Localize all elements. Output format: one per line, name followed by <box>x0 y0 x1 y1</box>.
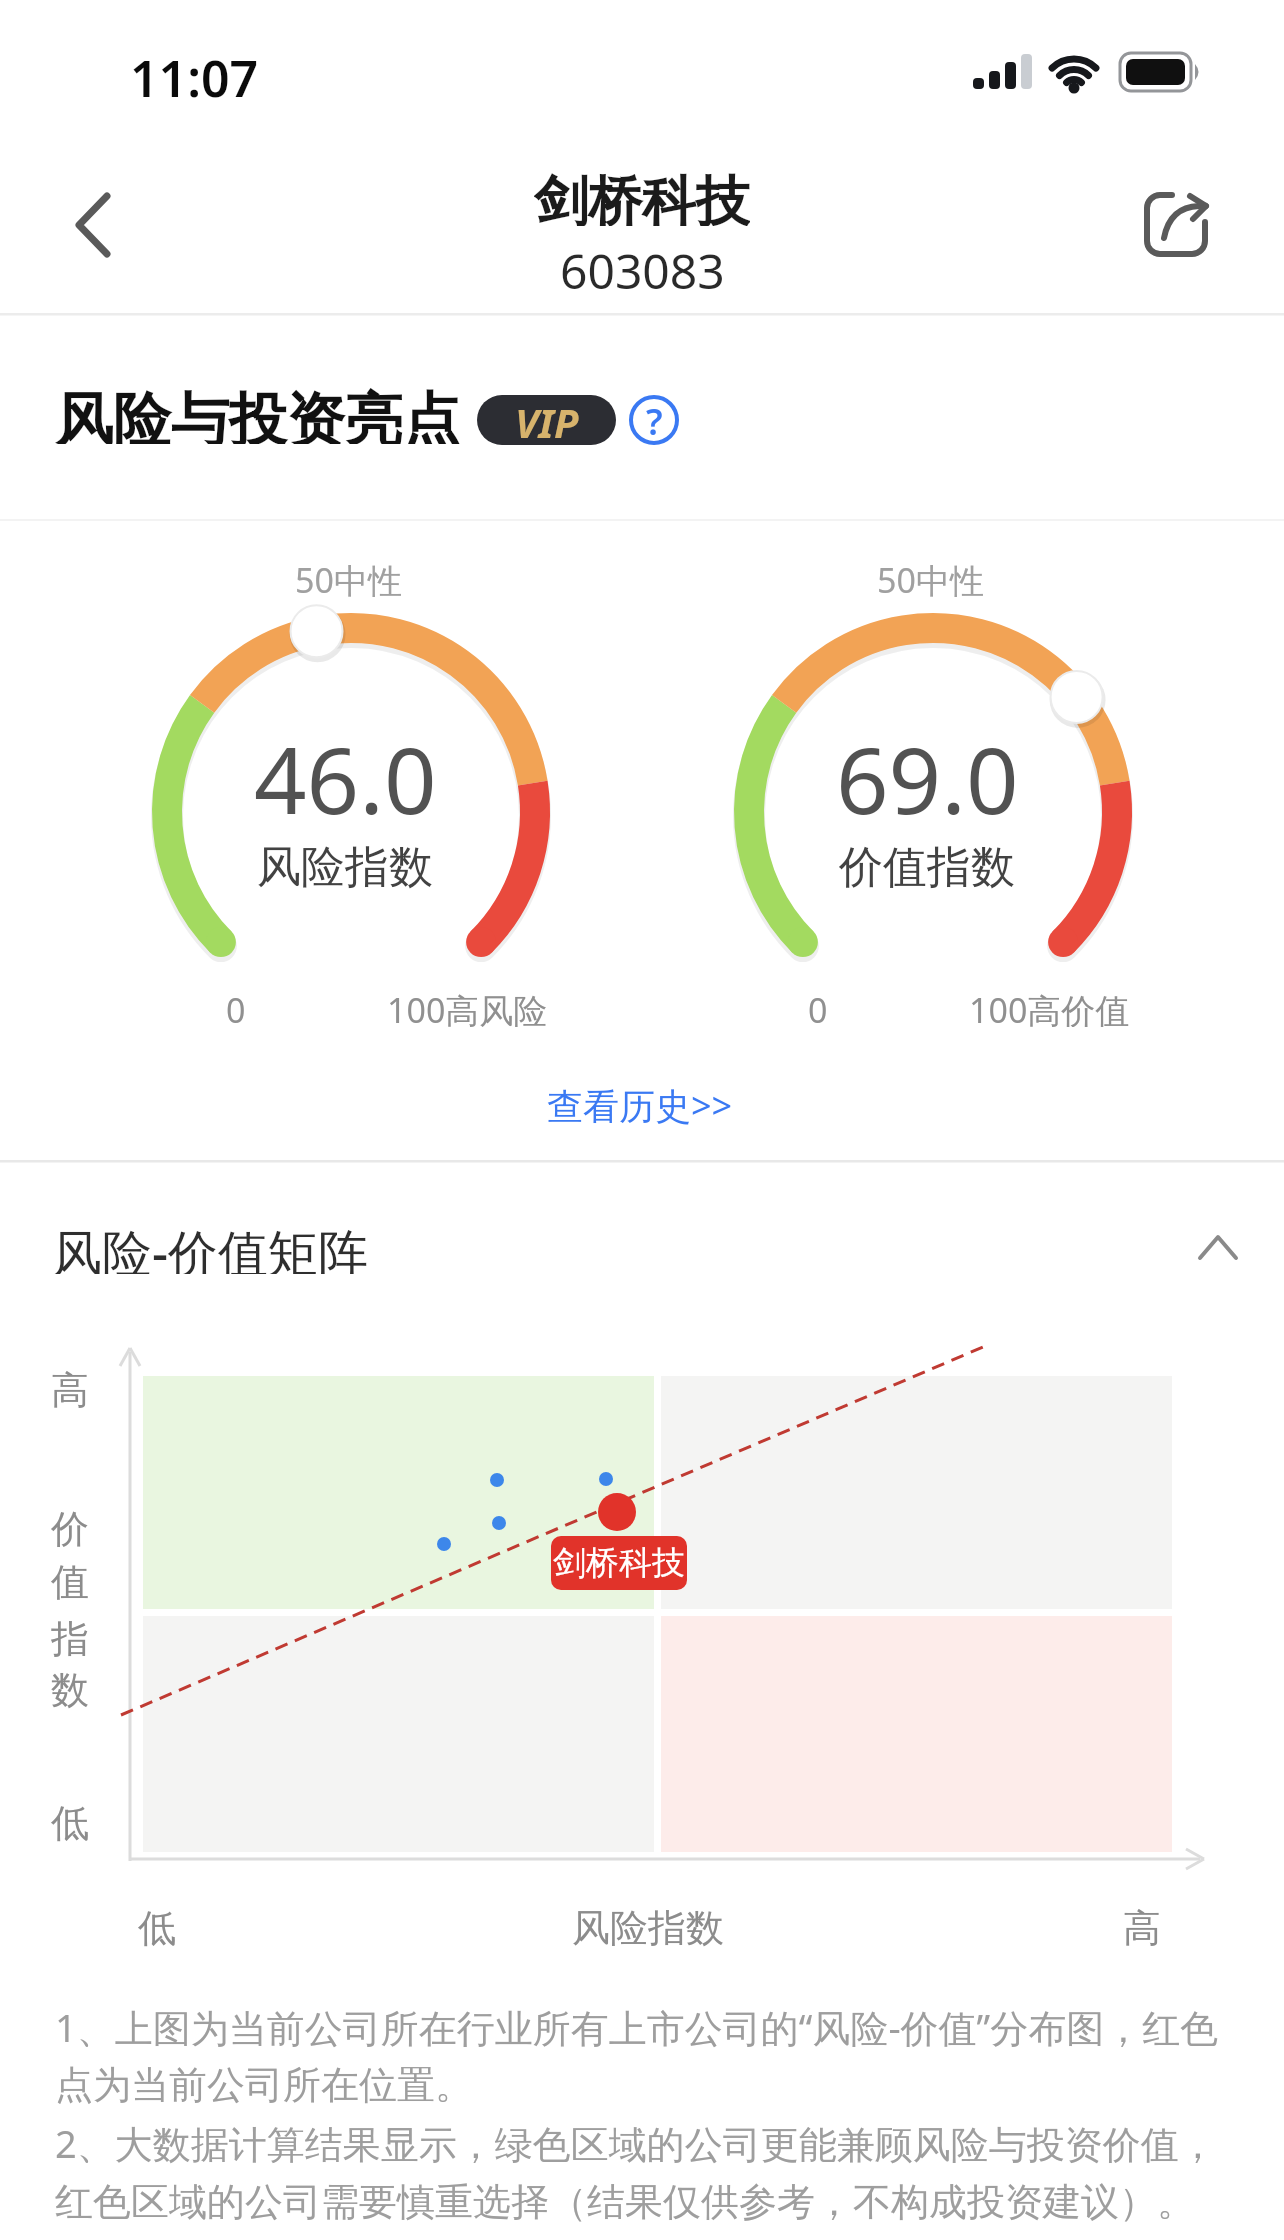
staticText: 100高价值 <box>969 987 1130 1027</box>
staticText: 100高风险 <box>387 987 548 1027</box>
staticText: 剑桥科技 <box>553 1542 685 1584</box>
staticText: 50中性 <box>877 557 984 597</box>
staticText: 50中性 <box>295 557 402 597</box>
staticText: 风险-价值矩阵 <box>52 1218 369 1274</box>
staticText: 查看历史>> <box>547 1081 733 1125</box>
staticText: 值 <box>51 1558 89 1602</box>
staticText: 风险指数 <box>572 1904 724 1948</box>
staticText: 低 <box>138 1904 176 1948</box>
button[interactable] <box>55 180 131 270</box>
staticText: 2、大数据计算结果显示，绿色区域的公司更能兼顾风险与投资价值， <box>55 2117 1217 2169</box>
staticText: 价值指数 <box>839 840 1015 892</box>
staticText: 603083 <box>560 238 725 290</box>
staticText: 0 <box>808 987 828 1027</box>
staticText: 指 <box>51 1615 89 1659</box>
staticText: 1、上图为当前公司所在行业所有上市公司的“风险-价值”分布图，红色 <box>55 2001 1219 2053</box>
staticText: VIP <box>515 395 579 445</box>
staticText: 11:07 <box>130 44 259 98</box>
button[interactable] <box>1185 1215 1255 1285</box>
staticText: 低 <box>51 1799 89 1843</box>
staticText: 高 <box>51 1366 89 1410</box>
staticText: 红色区域的公司需要慎重选择（结果仅供参考，不构成投资建议）。 <box>55 2178 1195 2226</box>
button[interactable]: VIP <box>477 395 616 445</box>
staticText: 高 <box>1123 1904 1161 1948</box>
staticText: ? <box>646 397 663 443</box>
staticText: 价 <box>51 1505 89 1549</box>
staticText: 点为当前公司所在位置。 <box>55 2061 473 2109</box>
staticText: 69.0 <box>836 716 1019 816</box>
staticText: 剑桥科技 <box>534 168 750 226</box>
staticText: 风险指数 <box>257 840 433 892</box>
staticText: 数 <box>51 1666 89 1710</box>
staticText: 风险与投资亮点 <box>55 384 461 444</box>
button[interactable]: 查看历史>> <box>490 1081 790 1125</box>
button[interactable] <box>1130 180 1225 270</box>
button[interactable]: ? <box>631 397 677 443</box>
staticText: 46.0 <box>254 716 437 816</box>
staticText: 0 <box>226 987 246 1027</box>
